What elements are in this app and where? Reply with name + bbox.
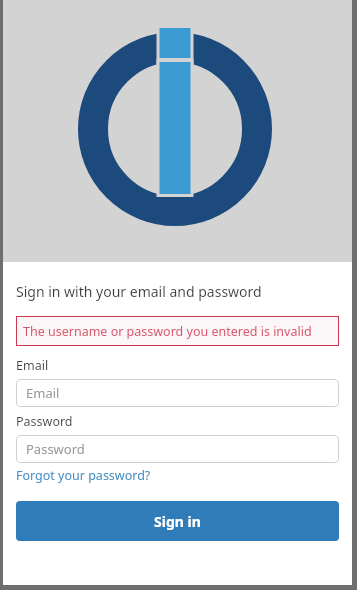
staticText: Forgot your password? xyxy=(16,467,151,484)
staticText: The username or password you entered is … xyxy=(23,323,312,340)
staticText: Password xyxy=(16,413,73,430)
button[interactable]: Forgot your password? xyxy=(16,467,151,484)
staticText: Sign in with your email and password xyxy=(16,282,262,301)
staticText: Password xyxy=(26,440,85,458)
staticText: Email xyxy=(16,357,49,374)
button[interactable]: Password xyxy=(16,435,339,463)
staticText: Email xyxy=(26,384,60,402)
button[interactable]: Sign in xyxy=(16,501,339,541)
staticText: Sign in xyxy=(154,512,201,531)
button[interactable]: Email xyxy=(16,379,339,407)
